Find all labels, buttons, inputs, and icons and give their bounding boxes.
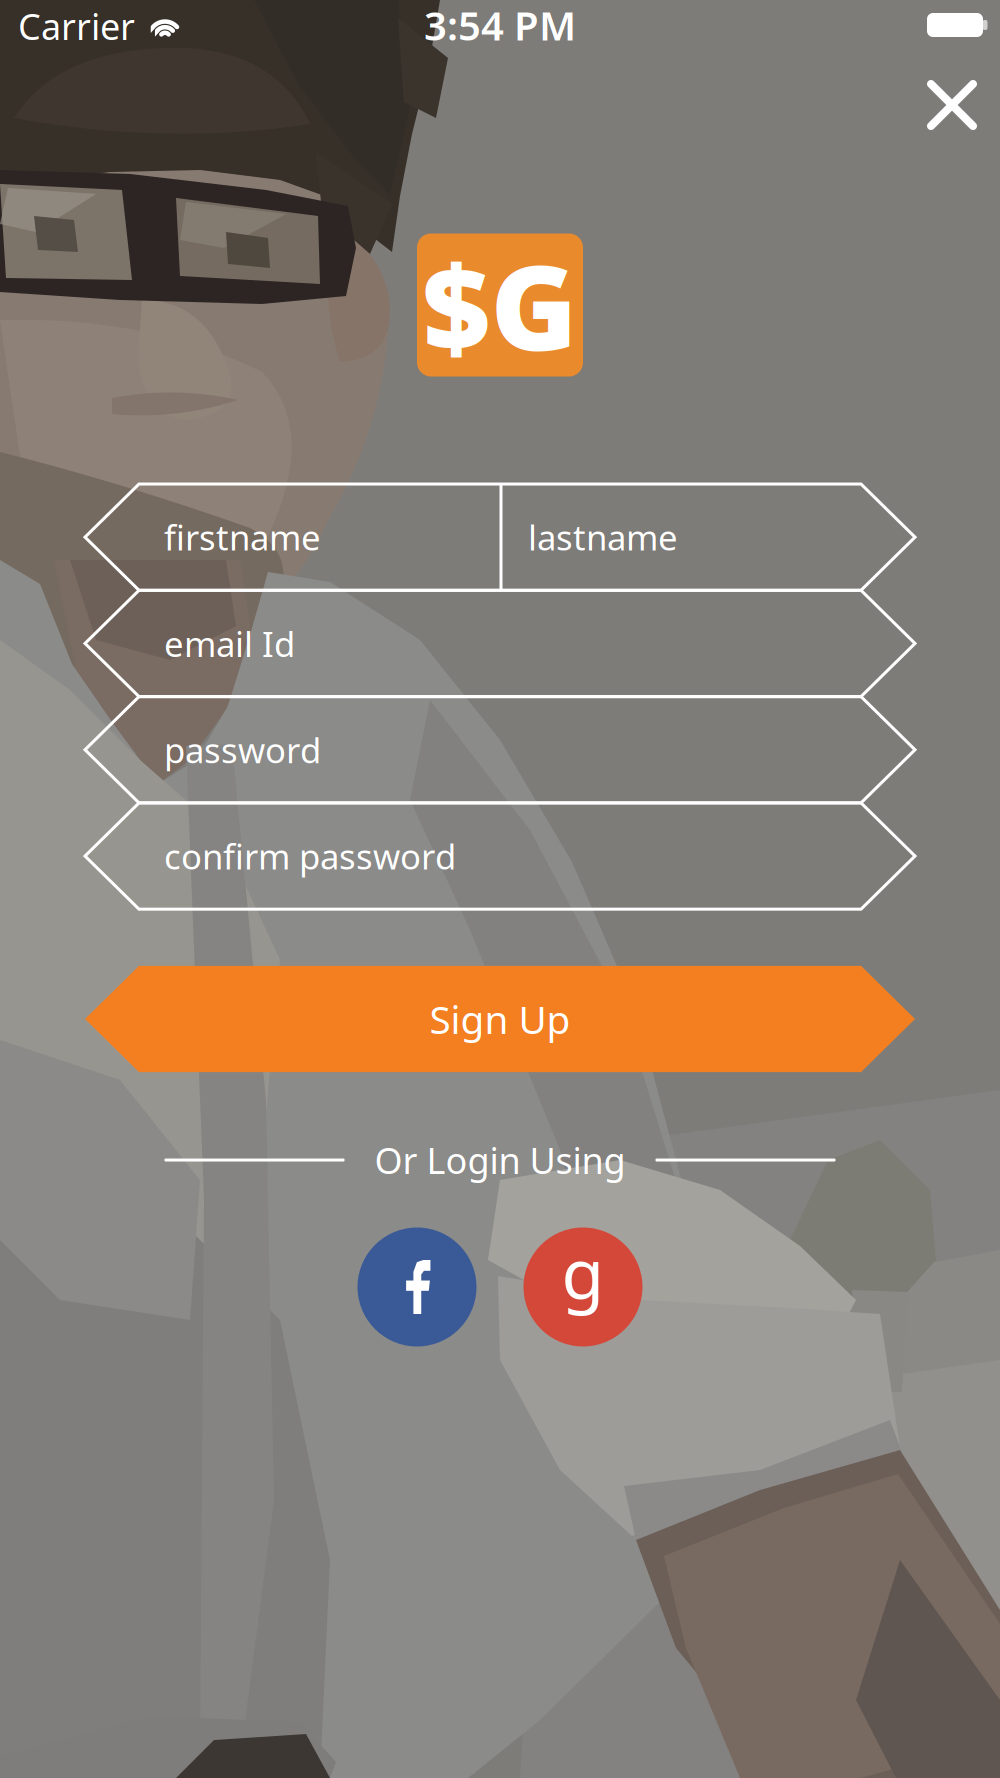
button[interactable]: Close <box>897 50 1000 160</box>
staticText: g <box>561 1226 604 1318</box>
staticText: Or Login Using <box>374 1136 625 1184</box>
staticText: Sign Up <box>429 993 570 1045</box>
staticText: firstname <box>164 514 321 560</box>
staticText: email Id <box>164 620 295 666</box>
staticText: password <box>164 727 321 773</box>
staticText: Carrier <box>18 2 135 50</box>
staticText: confirm password <box>164 833 456 879</box>
button[interactable]: Sign Up <box>85 966 915 1072</box>
button[interactable]: Log in with Facebook <box>357 1227 476 1346</box>
button[interactable]: Log in with Google <box>523 1227 642 1346</box>
staticText: lastname <box>528 514 678 560</box>
staticText: 3:54 PM <box>424 0 576 51</box>
staticText: $G <box>422 227 577 383</box>
